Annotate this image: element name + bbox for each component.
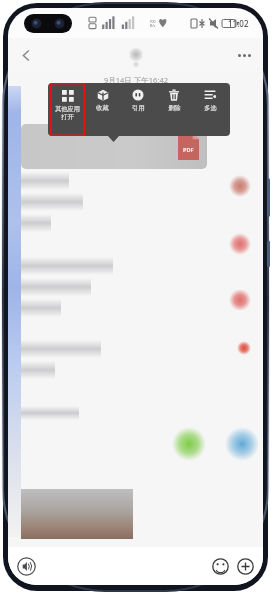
button[interactable]: Emoji xyxy=(210,556,230,576)
staticText: PDF xyxy=(183,146,194,153)
button[interactable]: 收藏 xyxy=(85,83,120,136)
staticText: 引用 xyxy=(132,104,145,112)
button[interactable]: 其他应用 xyxy=(51,84,84,135)
staticText: 多选 xyxy=(204,104,217,112)
staticText: 9月14日 下午16:42 xyxy=(104,75,168,85)
button[interactable]: More actions xyxy=(235,556,255,576)
staticText: 删除 xyxy=(168,104,181,112)
staticText: 打开 xyxy=(61,113,74,121)
button[interactable]: Voice input xyxy=(16,556,36,576)
button[interactable]: Back xyxy=(12,41,40,69)
button[interactable]: More options xyxy=(231,42,257,68)
button[interactable]: 删除 xyxy=(156,83,192,136)
staticText: 11:02 xyxy=(228,18,249,29)
staticText: 700 B/s xyxy=(149,19,156,28)
button[interactable]: PDF xyxy=(21,124,207,169)
staticText: 其他应用 xyxy=(55,105,80,113)
button[interactable]: 引用 xyxy=(120,83,156,136)
button[interactable]: 多选 xyxy=(192,83,228,136)
staticText: 收藏 xyxy=(96,104,109,112)
